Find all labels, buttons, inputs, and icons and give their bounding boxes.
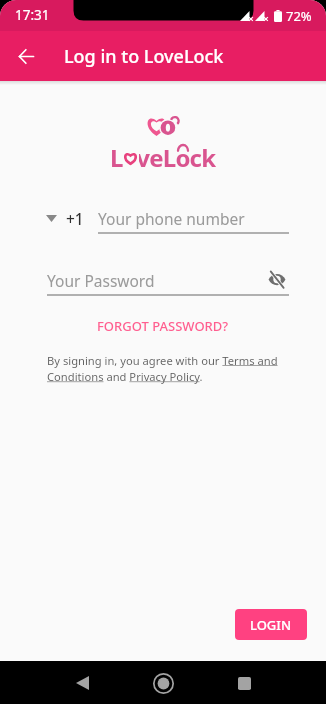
button[interactable]: LOGIN (235, 609, 307, 640)
staticText: 17:31 (15, 6, 50, 24)
staticText: Your Password (47, 270, 155, 291)
button[interactable]: FORGOT PASSWORD? (91, 313, 235, 339)
staticText: LOGIN (250, 616, 292, 634)
button[interactable]: Show password (264, 267, 289, 292)
staticText: Log in to LoveLock (64, 44, 224, 69)
staticText: Your phone number (98, 208, 245, 229)
staticText: By signing in, you agree with our Terms … (47, 353, 281, 384)
staticText: 72% (286, 7, 312, 25)
staticText: +1 (66, 208, 84, 229)
button[interactable]: Recent apps (230, 669, 258, 697)
button[interactable]: Select country code (46, 208, 84, 229)
staticText: LoveLock (110, 141, 216, 168)
staticText: FORGOT PASSWORD? (97, 317, 229, 335)
button[interactable]: Back (6, 36, 46, 76)
button[interactable]: Home (149, 669, 177, 697)
button[interactable]: Back (68, 669, 96, 697)
